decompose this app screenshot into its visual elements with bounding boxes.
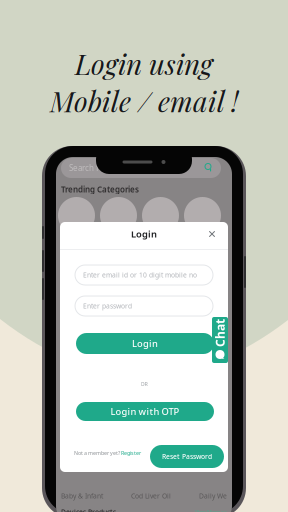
staticText: View More >> — [195, 508, 227, 512]
button[interactable]: Reset Password — [150, 445, 224, 468]
staticText: Cod Liver Oil — [131, 492, 171, 500]
staticText: Login using — [75, 45, 213, 82]
staticText: Daily We — [199, 492, 227, 500]
button[interactable]: Login with OTP — [76, 402, 214, 421]
staticText: Login — [132, 337, 158, 350]
staticText: Enter password — [83, 302, 132, 310]
staticText: Enter email id or 10 digit mobile no — [83, 271, 197, 279]
staticText: Mobile / email ! — [50, 82, 238, 119]
staticText: Chat — [206, 325, 234, 341]
button[interactable]: Register — [120, 449, 141, 457]
staticText: Login — [131, 228, 157, 240]
button[interactable]: Login — [76, 333, 214, 354]
staticText: Search for — [69, 163, 107, 173]
staticText: Baby & Infant — [61, 492, 103, 500]
staticText: OR — [140, 380, 147, 388]
staticText: Reset Password — [162, 452, 212, 461]
staticText: Not a member yet? — [74, 449, 120, 457]
staticText: Trending Categories — [61, 184, 139, 195]
staticText: Register — [120, 449, 141, 457]
button[interactable]: Chat — [212, 317, 228, 363]
staticText: Devices Products — [61, 508, 116, 512]
button[interactable]: Close — [204, 226, 220, 242]
staticText: Login with OTP — [110, 405, 179, 418]
